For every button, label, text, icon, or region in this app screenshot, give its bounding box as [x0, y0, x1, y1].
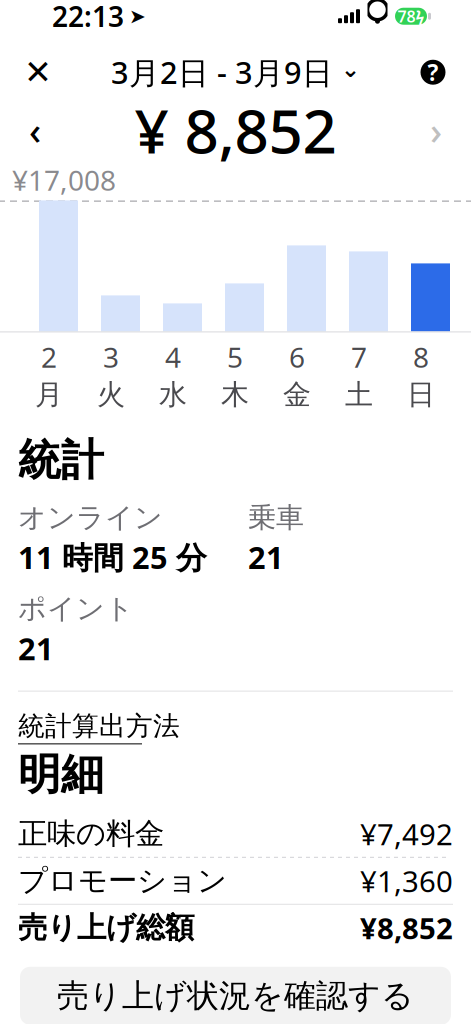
button[interactable]: 売り上げ状況を確認する: [20, 967, 451, 1024]
staticText: 6: [289, 338, 305, 376]
staticText: 7: [351, 338, 367, 376]
staticText: 売り上げ状況を確認する: [57, 976, 414, 1015]
staticText: 2: [41, 338, 57, 376]
staticText: 統計算出方法: [18, 710, 180, 742]
button[interactable]: 次の週: [409, 105, 463, 155]
staticText: 木: [221, 378, 249, 412]
staticText: 5: [227, 338, 243, 376]
button[interactable]: ヘルプ: [405, 46, 461, 98]
staticText: 4: [165, 338, 181, 376]
staticText: 月: [35, 378, 63, 412]
staticText: ✕: [24, 53, 52, 91]
staticText: 正味の料金: [18, 816, 164, 852]
staticText: 火: [97, 378, 125, 412]
staticText: ポイント: [18, 591, 134, 626]
staticText: 21: [248, 537, 284, 577]
staticText: 3: [103, 338, 119, 376]
staticText: 日: [407, 378, 435, 412]
button[interactable]: 統計算出方法: [18, 692, 180, 748]
staticText: 金: [283, 378, 311, 412]
staticText: 11 時間 25 分: [18, 537, 207, 577]
staticText: プロモーション: [18, 863, 227, 899]
staticText: 8: [413, 338, 429, 376]
staticText: ⌄: [341, 56, 360, 82]
staticText: 78: [397, 6, 415, 27]
button[interactable]: 閉じる: [10, 46, 66, 98]
staticText: 水: [159, 378, 187, 412]
staticText: 乗車: [248, 500, 304, 535]
staticText: 22:13: [52, 0, 124, 35]
staticText: ¥7,492: [360, 814, 453, 853]
staticText: ϟ: [415, 6, 424, 27]
staticText: ¥1,360: [360, 861, 453, 900]
staticText: ¥8,852: [360, 908, 453, 947]
staticText: ¥17,008: [12, 161, 116, 198]
staticText: ‹: [29, 105, 41, 155]
staticText: ?: [427, 57, 438, 87]
staticText: ›: [430, 105, 442, 155]
staticText: オンライン: [18, 500, 163, 535]
staticText: ➤: [129, 5, 146, 28]
button[interactable]: 前の週: [8, 105, 62, 155]
staticText: ¥ 8,852: [134, 90, 336, 170]
staticText: 統計: [18, 434, 104, 486]
staticText: 明細: [18, 748, 104, 801]
staticText: 土: [345, 378, 373, 412]
staticText: 3月2日 - 3月9日: [111, 52, 333, 93]
staticText: 売り上げ総額: [18, 910, 194, 946]
staticText: 21: [18, 628, 54, 669]
